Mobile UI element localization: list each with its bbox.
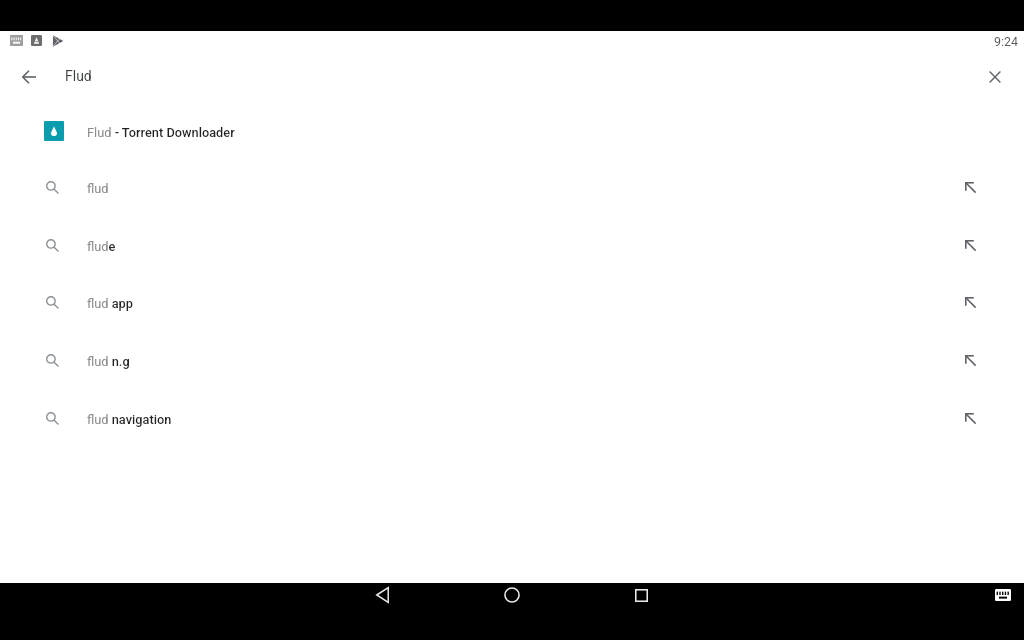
staticText: Flud [65,68,92,84]
button[interactable]: Clear search [971,53,1019,101]
button[interactable]: flud navigation [0,390,1024,446]
staticText: flud [87,181,109,196]
button[interactable]: Back [5,53,53,101]
staticText: flude [87,239,116,254]
staticText: flud app [87,296,133,311]
button[interactable]: flud app [0,274,1024,330]
staticText: flud n.g [87,354,130,369]
button[interactable]: flud n.g [0,332,1024,388]
button[interactable]: Insert suggestion [958,233,982,257]
staticText: Flud - Torrent Downloader [87,125,235,140]
staticText: 9:24 [994,34,1019,49]
button[interactable]: flud [0,159,1024,215]
button[interactable]: Insert suggestion [958,348,982,372]
button[interactable]: Flud - Torrent Downloader [0,103,1024,159]
staticText: flud navigation [87,412,172,427]
button[interactable]: Back [362,575,402,615]
button[interactable]: flude [0,217,1024,273]
button[interactable]: Insert suggestion [958,406,982,430]
button[interactable]: Insert suggestion [958,290,982,314]
button[interactable]: Insert suggestion [958,175,982,199]
button[interactable]: Recent apps [621,575,661,615]
button[interactable]: Switch keyboard [990,582,1016,608]
button[interactable]: Home [492,575,532,615]
